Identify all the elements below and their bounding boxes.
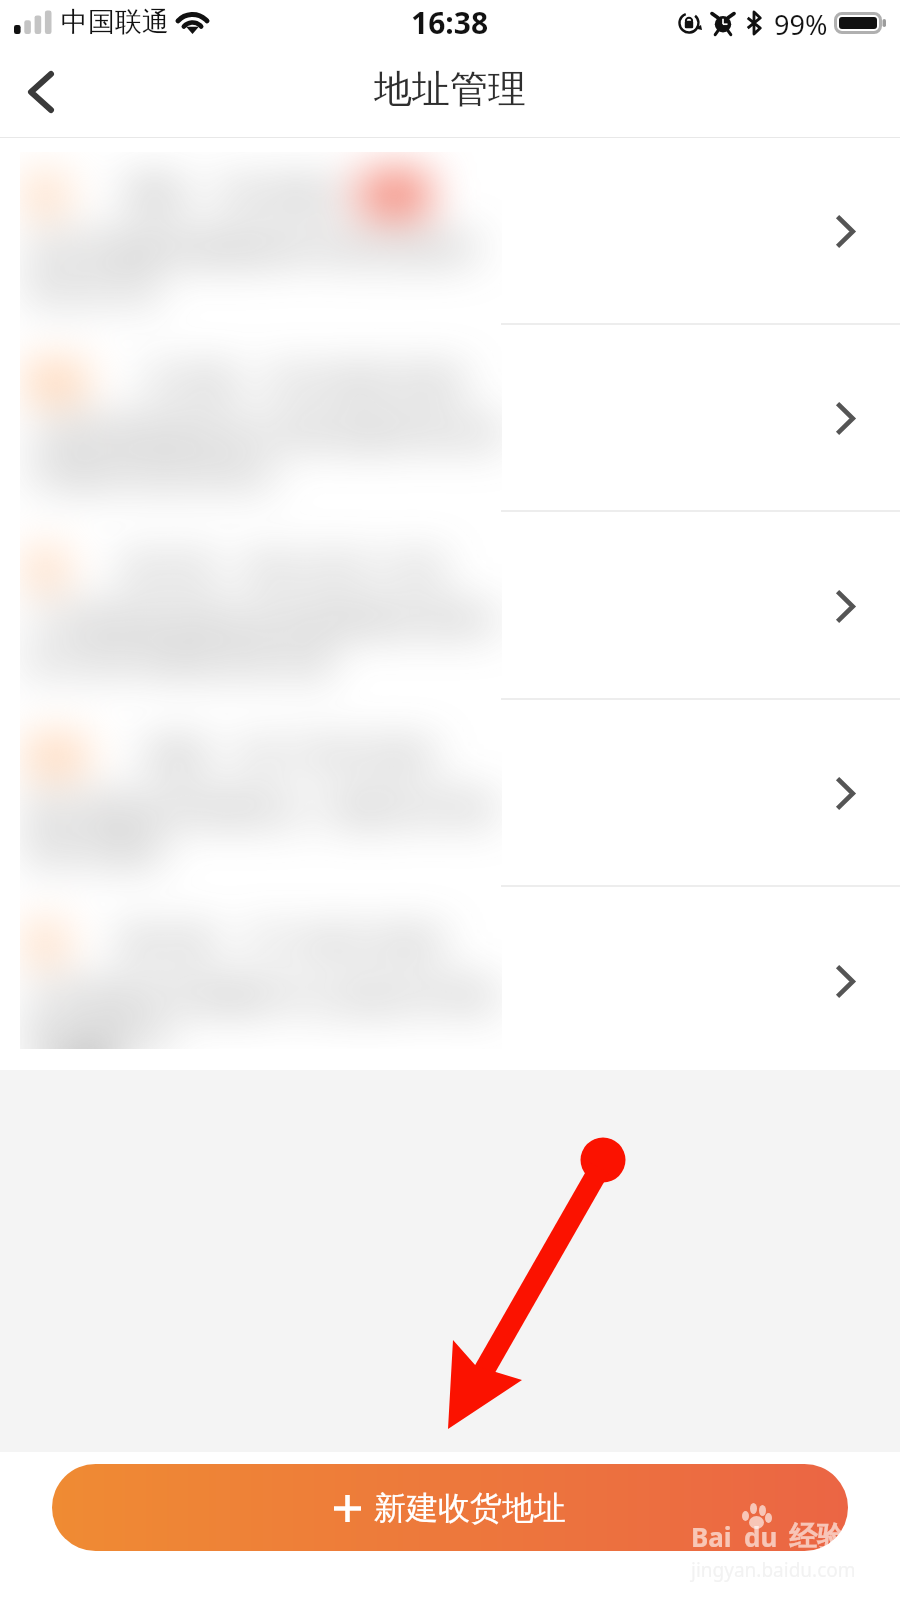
staticText: 186 2233 1100 <box>239 548 444 589</box>
button[interactable]: 收货地址 4 <box>0 700 900 887</box>
staticText: 150 6688 0000 <box>260 361 465 402</box>
staticText: 学校 <box>35 743 77 769</box>
button[interactable]: 收货地址 5 <box>0 888 900 1075</box>
staticText: 刘德 <box>144 737 204 775</box>
staticText: 138 8888 <box>209 174 337 215</box>
staticText: Bai <box>691 1519 732 1554</box>
staticText: jingyan.baidu.com <box>691 1557 856 1583</box>
staticText: 浙江省杭州市西湖区文一西路969号阿里巴巴园区 <box>26 789 502 867</box>
staticText: 默认 <box>371 180 417 209</box>
staticText: 135 7799 0000 <box>230 735 435 776</box>
staticText: 经验 <box>789 1519 845 1554</box>
staticText: 公司 <box>35 369 77 395</box>
staticText: 177 4455 0000 <box>239 922 444 963</box>
staticText: 王大锤 <box>144 363 234 401</box>
staticText: 16:38 <box>411 2 489 43</box>
button[interactable]: 收货地址 2 <box>0 325 900 512</box>
staticText: 上海市浦东新区张江高科技园区博云路2号楼302室A区前台 <box>26 415 502 492</box>
staticText: 地址管理 <box>374 65 526 113</box>
staticText: 广东省深圳市南山区科技园南区深南大道10000号腾讯滨海大厦 <box>26 602 502 679</box>
button[interactable]: Back <box>0 56 82 128</box>
staticText: 江苏省南京市鼓楼区中山北路200号紫峰大厦2801 <box>26 976 502 1049</box>
staticText: du <box>744 1519 778 1554</box>
staticText: 99% <box>774 6 828 43</box>
button[interactable]: 新建收货地址 <box>52 1464 848 1551</box>
button[interactable]: 收货地址 3 <box>0 513 900 700</box>
staticText: 李晓 <box>123 176 183 214</box>
staticText: 中国联通 <box>61 5 169 39</box>
staticText: 北京市朝阳区建国路88号现代城A座1单元301室 <box>26 228 502 308</box>
staticText: 新建收货地址 <box>374 1488 566 1528</box>
button[interactable]: 收货地址 1 <box>0 138 900 325</box>
